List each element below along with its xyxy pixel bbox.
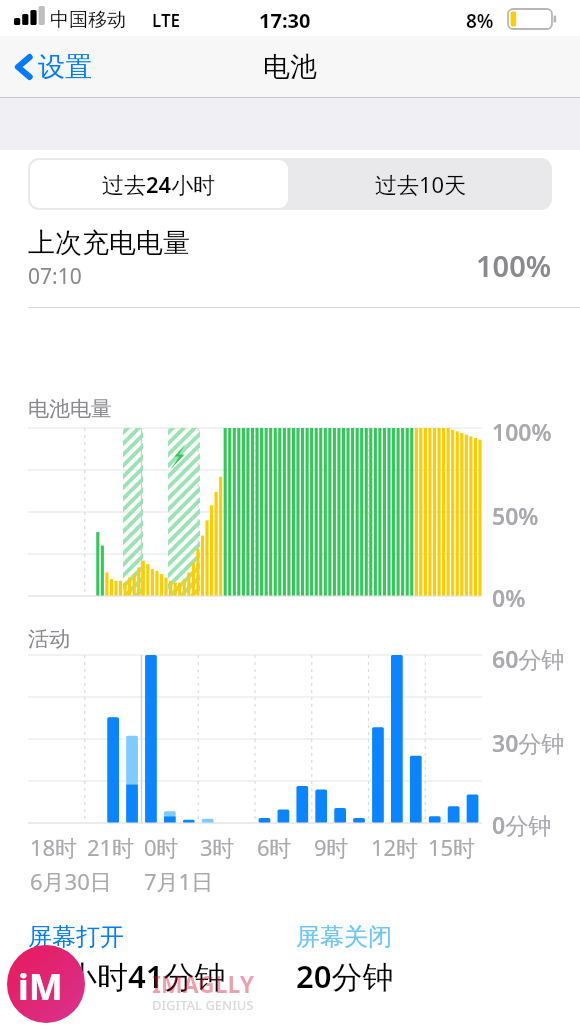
staticText: 0时	[144, 832, 179, 862]
staticText: DIGITAL GENIUS	[152, 996, 254, 1014]
staticText: 6时	[257, 832, 292, 862]
staticText: 6月30日	[30, 866, 112, 896]
staticText: 电池电量	[28, 396, 112, 422]
staticText: 18时	[30, 832, 78, 862]
staticText: 活动	[28, 626, 70, 652]
staticText: 15时	[428, 832, 476, 862]
staticText: 中国移动	[50, 8, 126, 32]
staticText: 100%	[476, 246, 552, 285]
staticText: 12时	[371, 832, 419, 862]
staticText: 设置	[38, 50, 92, 84]
staticText: 过去10天	[375, 169, 467, 199]
staticText: IMAGLLY	[152, 968, 255, 999]
staticText: 21时	[87, 832, 135, 862]
staticText: 屏幕打开	[28, 922, 124, 952]
staticText: 17:30	[259, 7, 311, 34]
staticText: 07:10	[28, 262, 82, 291]
staticText: iM	[18, 962, 63, 1011]
staticText: 小时41分钟	[66, 955, 226, 997]
staticText: 电池	[263, 50, 317, 84]
staticText: 3时	[200, 832, 235, 862]
staticText: 过去24小时	[102, 169, 216, 199]
staticText: 屏幕关闭	[296, 922, 392, 952]
button[interactable]: 过去10天	[290, 158, 552, 210]
staticText: 8%	[466, 8, 494, 34]
staticText: 60分钟	[492, 643, 565, 674]
staticText: 0分钟	[492, 809, 552, 840]
staticText: 30分钟	[492, 727, 565, 758]
staticText: 100%	[492, 416, 552, 447]
staticText: LTE	[152, 9, 181, 32]
staticText: 0%	[492, 582, 526, 613]
staticText: 20分钟	[296, 955, 394, 997]
staticText: 9时	[314, 832, 349, 862]
staticText: 50%	[492, 500, 539, 531]
other: 返回	[14, 50, 34, 84]
staticText: 7月1日	[144, 866, 214, 896]
button[interactable]: 过去24小时	[30, 160, 288, 208]
button[interactable]: 返回	[0, 44, 104, 90]
staticText: 上次充电电量	[28, 226, 190, 260]
